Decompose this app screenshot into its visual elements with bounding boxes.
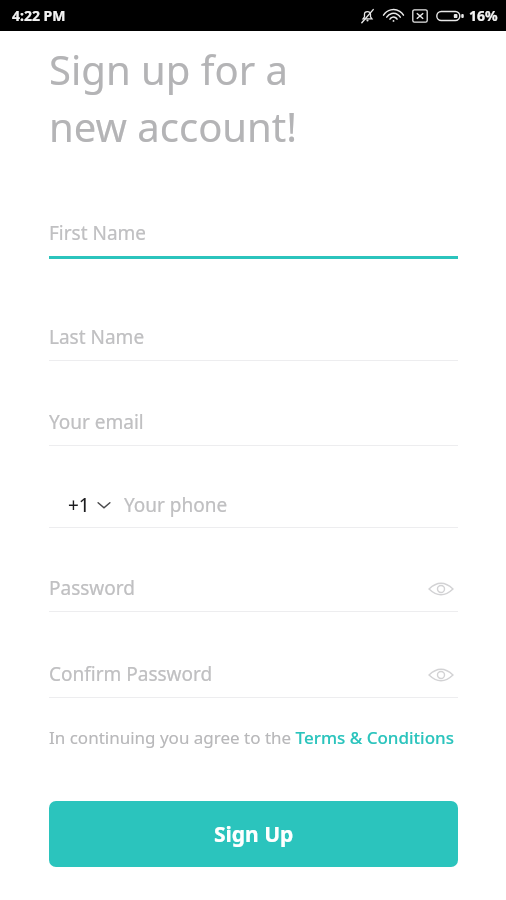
staticText: First Name (49, 220, 147, 246)
staticText: Your email (49, 409, 144, 435)
button[interactable]: Confirm Password (49, 653, 458, 697)
staticText: Confirm Password (49, 661, 213, 687)
staticText: 16% (469, 6, 498, 25)
button[interactable]: Last Name (49, 316, 458, 360)
staticText: +1 (68, 492, 90, 518)
staticText: Password (49, 575, 135, 601)
staticText: In continuing you agree to the Terms & C… (49, 726, 455, 749)
staticText: Sign Up (214, 820, 294, 849)
button[interactable]: Show password (424, 658, 458, 692)
button[interactable]: Your phone (124, 483, 458, 527)
staticText: Last Name (49, 324, 145, 350)
staticText: Your phone (124, 492, 228, 518)
staticText: Sign up for a new account! (49, 42, 297, 153)
button[interactable]: Your email (49, 401, 458, 445)
staticText: 4:22 PM (12, 6, 66, 25)
button[interactable]: Show password (424, 572, 458, 606)
button[interactable]: +1 (68, 492, 111, 518)
button[interactable]: Sign Up (49, 801, 458, 867)
button[interactable]: In continuing you agree to the Terms & C… (49, 726, 458, 749)
button[interactable]: Password (49, 567, 458, 611)
button[interactable]: First Name (49, 212, 458, 256)
